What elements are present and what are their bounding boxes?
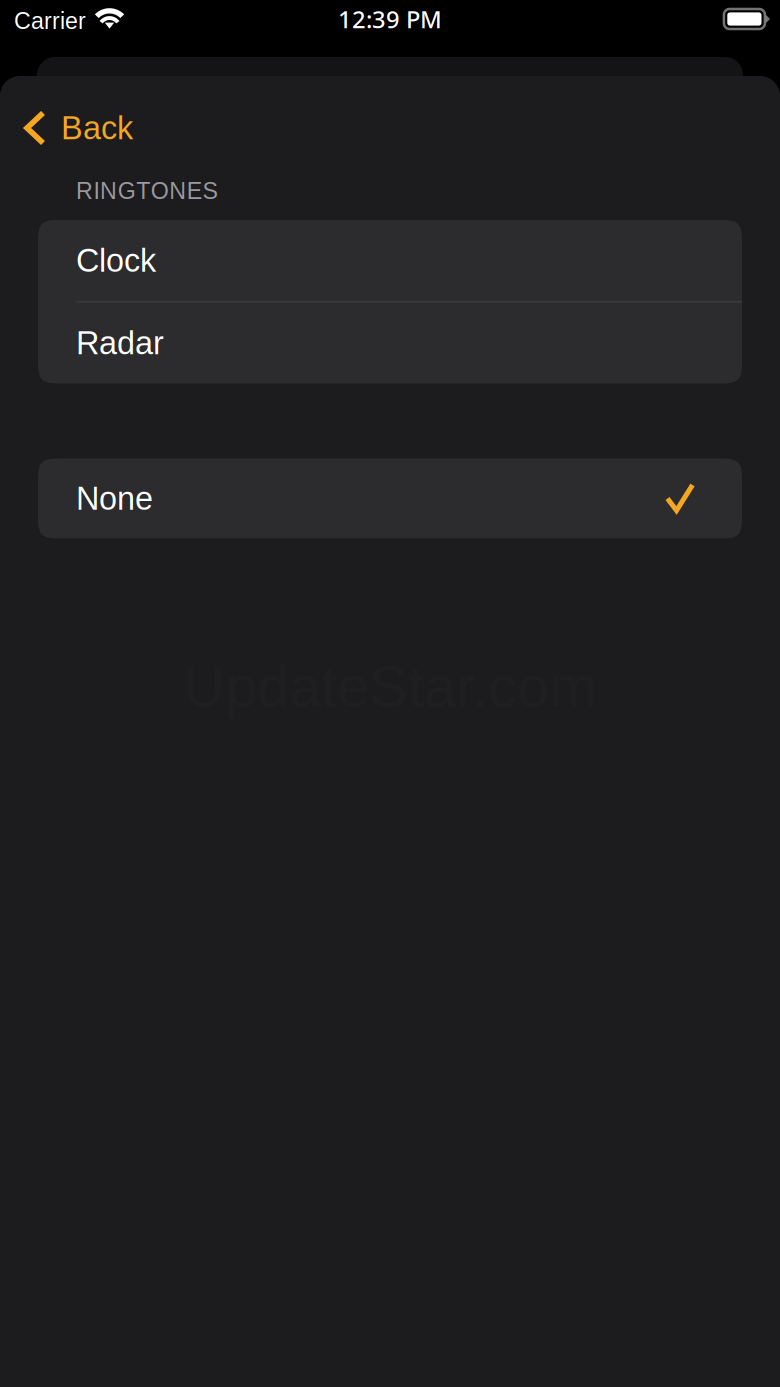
button[interactable]: Clock — [38, 220, 742, 301]
staticText: Radar — [76, 325, 164, 361]
staticText: Back — [61, 110, 133, 146]
button[interactable]: None — [38, 458, 742, 538]
staticText: 12:39 PM — [338, 3, 442, 35]
staticText: Carrier — [14, 8, 86, 34]
staticText: None — [76, 480, 153, 517]
staticText: RINGTONES — [76, 178, 217, 204]
button[interactable]: Radar — [38, 302, 742, 383]
button[interactable]: Back — [0, 100, 153, 156]
staticText: Clock — [76, 242, 156, 279]
